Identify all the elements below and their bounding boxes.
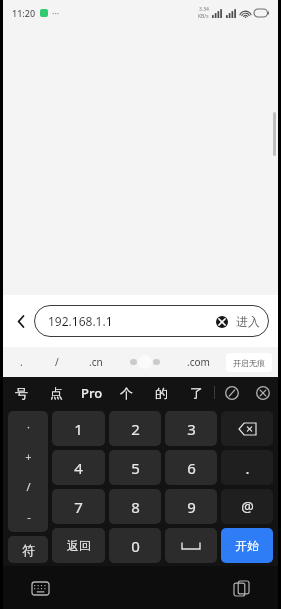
button[interactable]: / [52, 351, 62, 373]
button[interactable]: 1 [52, 411, 105, 446]
staticText: 进入 [236, 314, 260, 329]
staticText: 的 [155, 385, 168, 401]
staticText: 点 [50, 385, 63, 401]
button[interactable]: 6 [165, 450, 217, 485]
staticText: @ [241, 497, 254, 516]
button[interactable]: 3 [165, 411, 217, 446]
button[interactable]: 0 [109, 528, 161, 563]
button[interactable]: 进入 [234, 314, 262, 329]
button[interactable]: 的 [144, 377, 179, 408]
button[interactable]: 9 [165, 489, 217, 524]
button[interactable]: 点 [39, 377, 74, 408]
button[interactable]: @ [221, 489, 273, 524]
staticText: 开启无痕 [233, 358, 265, 368]
button[interactable]: 开始 [221, 528, 273, 563]
button[interactable]: 了 [179, 377, 214, 408]
button[interactable]: Close keyboard [248, 377, 278, 408]
staticText: .cn [89, 355, 103, 369]
button[interactable]: 5 [109, 450, 161, 485]
button[interactable]: 8 [109, 489, 161, 524]
staticText: 6 [187, 458, 196, 478]
button[interactable]: 开启无痕 [226, 353, 272, 372]
staticText: + [25, 449, 32, 464]
button[interactable]: Keyboard [25, 573, 55, 603]
staticText: 2 [131, 419, 140, 439]
button[interactable]: . [17, 351, 26, 373]
button[interactable]: 号 [3, 377, 39, 408]
staticText: 开始 [235, 538, 259, 553]
button[interactable]: .cn [86, 351, 106, 373]
staticText: - [27, 509, 31, 524]
staticText: · [27, 419, 30, 434]
staticText: . [20, 355, 23, 369]
staticText: 0 [131, 536, 140, 556]
button[interactable]: 返回 [52, 528, 105, 563]
staticText: 3 [187, 419, 196, 439]
staticText: 返回 [67, 538, 91, 553]
staticText: 8 [131, 497, 140, 517]
staticText: 11:20 [12, 7, 36, 19]
button[interactable]: 个 [109, 377, 144, 408]
button[interactable]: 2 [109, 411, 161, 446]
staticText: 1 [74, 419, 83, 439]
staticText: Pro [81, 384, 103, 402]
button[interactable]: Clear [212, 312, 231, 331]
button[interactable]: 4 [52, 450, 105, 485]
staticText: .com [187, 355, 210, 369]
staticText: 7 [74, 497, 83, 517]
staticText: . [245, 458, 250, 478]
staticText: / [26, 479, 31, 494]
staticText: 4 [74, 458, 83, 478]
button[interactable]: Backspace [221, 411, 273, 446]
staticText: 9 [187, 497, 196, 517]
button[interactable]: Recent apps [226, 573, 256, 603]
staticText: 5 [131, 458, 140, 478]
staticText: 192.168.1.1 [48, 313, 113, 329]
button[interactable]: · [8, 411, 48, 532]
button[interactable]: 符 [8, 536, 48, 563]
staticText: KB/s [198, 13, 209, 20]
button[interactable]: .com [184, 351, 213, 373]
button[interactable]: Pro [74, 377, 109, 408]
button[interactable]: Back [8, 308, 34, 334]
button[interactable]: Attachment [215, 377, 248, 408]
staticText: 了 [190, 385, 203, 401]
button[interactable]: . [221, 450, 273, 485]
button[interactable]: Space [165, 528, 217, 563]
staticText: 3.34 [199, 6, 209, 13]
button[interactable]: 7 [52, 489, 105, 524]
staticText: ··· [52, 7, 60, 19]
button[interactable]: 192.168.1.1 [34, 305, 269, 337]
staticText: 个 [120, 385, 133, 401]
staticText: / [55, 355, 59, 369]
staticText: 符 [22, 542, 35, 558]
staticText: 号 [15, 385, 28, 401]
